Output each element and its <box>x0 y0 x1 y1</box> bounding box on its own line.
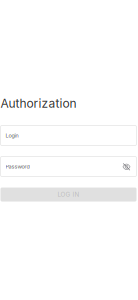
button[interactable]: Password <box>0 156 136 176</box>
button[interactable]: LOG IN <box>0 187 136 201</box>
button[interactable]: Show password <box>122 162 130 170</box>
staticText: Login <box>5 132 18 139</box>
staticText: Authorization <box>0 96 76 110</box>
staticText: LOG IN <box>57 191 79 198</box>
button[interactable]: Login <box>0 125 136 145</box>
staticText: Password <box>5 163 29 170</box>
